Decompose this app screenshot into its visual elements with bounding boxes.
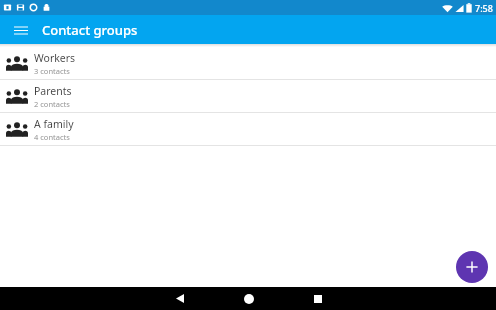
- button[interactable]: A family: [0, 113, 496, 145]
- staticText: Parents: [34, 84, 72, 98]
- staticText: 3 contacts: [34, 66, 70, 76]
- button[interactable]: Back: [145, 287, 214, 310]
- button[interactable]: Recent apps: [283, 287, 352, 310]
- staticText: Workers: [34, 51, 76, 65]
- button[interactable]: Home: [214, 287, 283, 310]
- button[interactable]: Parents: [0, 80, 496, 112]
- staticText: 4 contacts: [34, 132, 70, 142]
- staticText: 2 contacts: [34, 99, 70, 109]
- button[interactable]: Workers: [0, 47, 496, 79]
- staticText: A family: [34, 117, 74, 131]
- button[interactable]: Add group: [456, 251, 488, 283]
- button[interactable]: Open navigation drawer: [8, 17, 34, 43]
- staticText: 7:58: [475, 2, 493, 14]
- staticText: Contact groups: [42, 21, 138, 39]
